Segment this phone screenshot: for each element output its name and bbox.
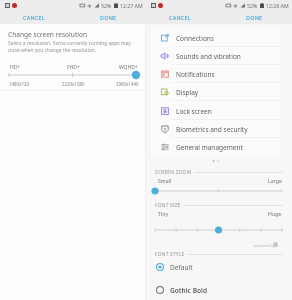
button[interactable]: Connections [151, 29, 280, 47]
staticText: 52% [247, 2, 258, 9]
staticText: HD+ [10, 64, 21, 71]
staticText: Change screen resolution [8, 30, 88, 39]
staticText: CANCEL [23, 14, 45, 21]
staticText: 12:28 AM [266, 2, 289, 9]
staticText: General management [176, 143, 243, 152]
button[interactable]: Default [146, 260, 292, 274]
button[interactable]: DONE [96, 12, 121, 23]
staticText: 52% [101, 2, 112, 9]
staticText: powered by [254, 243, 275, 248]
staticText: Small [158, 177, 172, 184]
button[interactable]: General management [151, 138, 280, 156]
staticText: 1480x720 [9, 81, 29, 87]
button[interactable]: Slider [146, 225, 292, 235]
staticText: Display [176, 88, 199, 97]
staticText: FHD+ [67, 64, 80, 71]
staticText: FONT STYLE [155, 251, 185, 258]
button[interactable]: CANCEL [19, 12, 49, 23]
staticText: 2220x1080 [62, 81, 85, 87]
button[interactable]: Resolution slider [0, 69, 146, 81]
staticText: Notifications [176, 70, 215, 79]
staticText: WQHD+ [119, 64, 138, 71]
staticText: Lock screen [176, 107, 212, 116]
button[interactable]: DONE [242, 12, 267, 23]
staticText: CANCEL [169, 14, 191, 21]
staticText: 2960x1440 [116, 81, 139, 87]
staticText: DONE [100, 14, 117, 21]
staticText: Connections [176, 34, 214, 43]
staticText: Default [170, 263, 193, 272]
button[interactable]: CANCEL [165, 12, 195, 23]
staticText: Huge [268, 210, 282, 217]
staticText: SCREEN ZOOM [155, 169, 192, 176]
staticText: 12:27 AM [120, 2, 143, 9]
staticText: Sounds and vibration [176, 52, 241, 61]
staticText: Select a resolution. Some currently runn… [8, 40, 131, 53]
staticText: DONE [246, 14, 263, 21]
staticText: Tiny [158, 210, 169, 217]
button[interactable]: Gothic Bold [146, 283, 292, 297]
button[interactable]: Lock screen [151, 102, 280, 120]
staticText: FONT SIZE [155, 202, 181, 209]
staticText: Gothic Bold [170, 286, 208, 295]
staticText: Large [268, 177, 282, 184]
button[interactable]: Display [151, 83, 280, 101]
button[interactable]: Sounds and vibration [151, 47, 280, 65]
button[interactable]: Biometrics and security [151, 120, 280, 138]
button[interactable]: Notifications [151, 65, 280, 83]
staticText: Biometrics and security [176, 125, 248, 134]
button[interactable]: Slider [146, 186, 292, 196]
